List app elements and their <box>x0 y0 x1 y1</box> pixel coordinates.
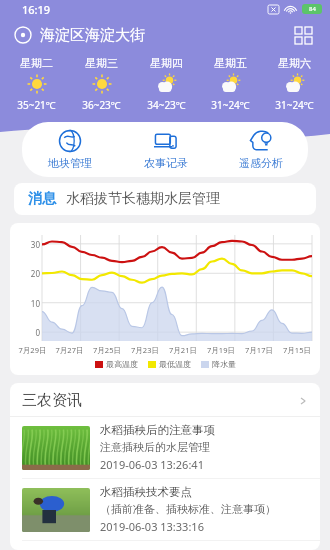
staticText: 7月15日 <box>278 345 316 355</box>
staticText: 消息 <box>28 190 56 208</box>
staticText: 10 <box>20 298 40 309</box>
button[interactable]: 地块管理 <box>22 129 118 170</box>
staticText: 星期六 <box>278 56 311 70</box>
staticText: 34~23℃ <box>147 98 186 112</box>
staticText: 16:19 <box>22 2 51 17</box>
staticText: 7月21日 <box>164 345 202 355</box>
staticText: 水稻插秧技术要点 <box>100 485 192 499</box>
staticText: 水稻插秧后的注意事项 <box>100 423 215 437</box>
staticText: 7月25日 <box>88 345 126 355</box>
staticText: 遥感分析 <box>239 156 283 170</box>
button[interactable]: 消息 <box>14 183 316 215</box>
staticText: 84 <box>309 5 316 13</box>
staticText: 2019-06-03 13:26:41 <box>100 457 204 472</box>
staticText: 最低温度 <box>159 359 191 369</box>
button[interactable]: 水稻插秧后的注意事项 <box>10 417 320 478</box>
staticText: 7月29日 <box>14 345 51 355</box>
staticText: 水稻拔节长穗期水层管理 <box>66 190 220 208</box>
button[interactable]: 星期三 <box>69 56 134 112</box>
staticText: 31~24℃ <box>211 98 250 112</box>
button[interactable]: 农事记录 <box>118 129 213 170</box>
staticText: 星期三 <box>85 56 118 70</box>
staticText: 7月23日 <box>126 345 164 355</box>
button[interactable]: 三农资讯 <box>10 383 320 416</box>
button[interactable]: 星期四 <box>134 56 198 112</box>
staticText: 30 <box>20 239 40 250</box>
button[interactable]: 水稻插秧技术要点 <box>10 479 320 540</box>
staticText: 20 <box>20 268 40 279</box>
staticText: 7月17日 <box>240 345 278 355</box>
button[interactable]: 星期六 <box>262 56 326 112</box>
staticText: 2019-06-03 13:33:16 <box>100 519 204 534</box>
staticText: 三农资讯 <box>22 391 82 410</box>
staticText: 31~24℃ <box>275 98 314 112</box>
staticText: 7月27日 <box>51 345 88 355</box>
button[interactable]: 星期五 <box>198 56 262 112</box>
staticText: 星期五 <box>214 56 247 70</box>
staticText: 农事记录 <box>144 156 188 170</box>
staticText: 星期二 <box>20 56 53 70</box>
staticText: 35~21℃ <box>17 98 56 112</box>
staticText: 7月19日 <box>202 345 240 355</box>
staticText: 注意插秧后的水层管理 <box>100 440 210 454</box>
button[interactable]: 星期二 <box>4 56 69 112</box>
staticText: （插前准备、插秧标准、注意事项） <box>100 502 276 516</box>
staticText: 星期四 <box>150 56 183 70</box>
staticText: 最高温度 <box>106 359 138 369</box>
other: More news <box>298 396 308 406</box>
staticText: 降水量 <box>212 359 236 369</box>
staticText: 地块管理 <box>48 156 92 170</box>
staticText: 海淀区海淀大街 <box>40 26 145 45</box>
staticText: 36~23℃ <box>82 98 121 112</box>
button[interactable]: More apps <box>290 22 316 48</box>
staticText: 0 <box>20 327 40 338</box>
button[interactable]: 遥感分析 <box>213 129 308 170</box>
